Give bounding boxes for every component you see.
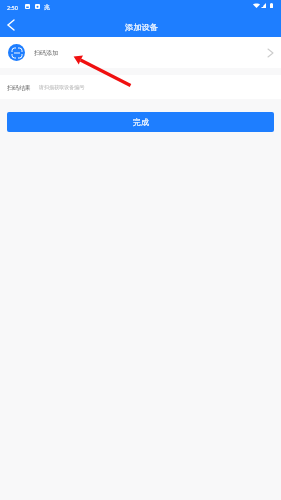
staticText: 扫码结果: [7, 84, 31, 91]
button[interactable]: 扫码添加: [0, 37, 281, 68]
staticText: 兆: [44, 3, 50, 11]
button[interactable]: Back: [0, 15, 22, 37]
staticText: 2:50: [7, 4, 18, 11]
staticText: 请扫描获取设备编号: [39, 84, 85, 90]
staticText: 完成: [133, 117, 149, 127]
button[interactable]: 完成: [7, 112, 274, 132]
staticText: 添加设备: [125, 22, 158, 32]
staticText: 扫码添加: [34, 49, 59, 57]
